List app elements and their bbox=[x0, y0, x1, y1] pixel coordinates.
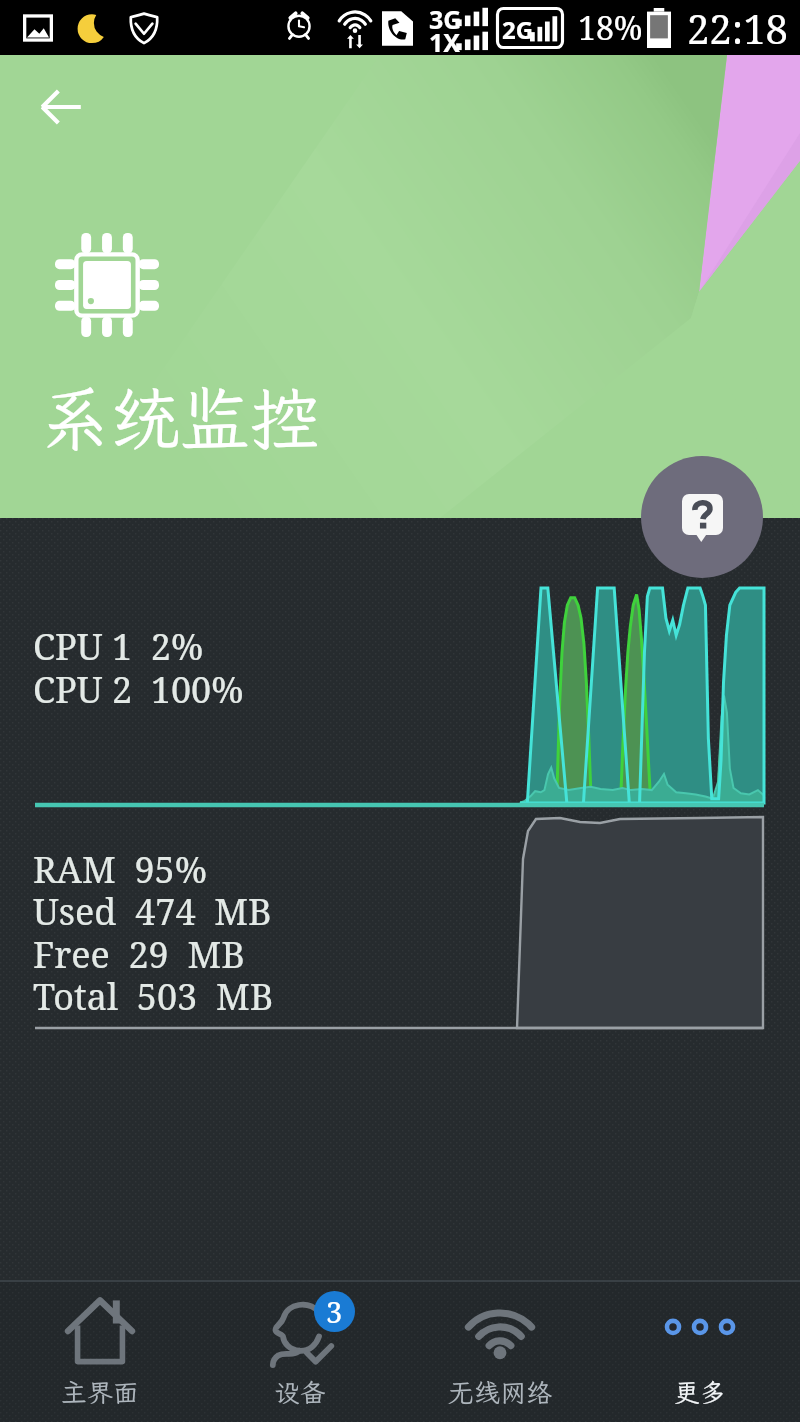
staticText: 3 bbox=[326, 1292, 343, 1331]
button[interactable]: Back bbox=[13, 59, 109, 155]
staticText: 主界面 bbox=[61, 1375, 140, 1409]
button[interactable]: 3 bbox=[200, 1282, 400, 1422]
staticText: Used 474 MB bbox=[33, 887, 272, 936]
staticText: 无线网络 bbox=[448, 1375, 553, 1409]
staticText: 18% bbox=[578, 6, 643, 50]
staticText: CPU 2 100% bbox=[33, 665, 244, 714]
button[interactable]: Help bbox=[641, 456, 763, 578]
staticText: Total 503 MB bbox=[33, 972, 274, 1021]
button[interactable]: 主界面 bbox=[0, 1282, 200, 1422]
button[interactable]: 更多 bbox=[600, 1282, 800, 1422]
staticText: 更多 bbox=[674, 1375, 727, 1409]
staticText: 系统监控 bbox=[40, 372, 320, 464]
button[interactable]: 无线网络 bbox=[400, 1282, 600, 1422]
staticText: 22:18 bbox=[687, 1, 788, 55]
staticText: CPU 1 2% bbox=[33, 622, 204, 671]
staticText: 设备 bbox=[274, 1375, 327, 1409]
staticText: Free 29 MB bbox=[33, 930, 245, 979]
staticText: 1X bbox=[429, 25, 461, 59]
staticText: 3G bbox=[429, 2, 462, 36]
staticText: RAM 95% bbox=[33, 845, 207, 894]
staticText: 2G bbox=[502, 13, 534, 46]
